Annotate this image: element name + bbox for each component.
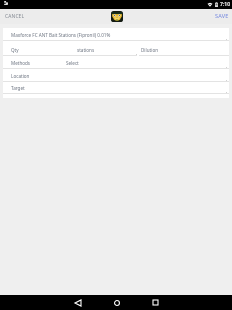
staticText: Maxforce FC ANT Bait Stations (Fipronil)…	[11, 32, 111, 38]
staticText: Methods	[11, 60, 31, 66]
staticText: SAVE	[215, 12, 229, 20]
button[interactable]: SAVE	[210, 10, 232, 24]
staticText: 7:10	[220, 1, 231, 8]
button[interactable]: Maxforce FC ANT Bait Stations (Fipronil)…	[3, 28, 229, 40]
staticText: Target	[11, 85, 25, 91]
staticText: Select	[66, 60, 79, 66]
button[interactable]: App icon	[111, 11, 123, 22]
staticText: Qty	[11, 47, 19, 53]
button[interactable]: Back	[62, 295, 93, 310]
staticText: Location	[11, 73, 30, 79]
button[interactable]: Location	[3, 69, 229, 81]
staticText: stations	[77, 47, 95, 53]
staticText: Dilution	[141, 47, 159, 53]
button[interactable]: Home	[101, 295, 132, 310]
button[interactable]: Qty	[3, 41, 137, 56]
button[interactable]: Target	[3, 82, 229, 93]
button[interactable]: CANCEL	[0, 10, 30, 23]
staticText: CANCEL	[5, 13, 25, 20]
button[interactable]: Recent apps	[140, 295, 171, 310]
button[interactable]: Dilution	[139, 41, 229, 56]
button[interactable]: Methods	[3, 56, 229, 68]
